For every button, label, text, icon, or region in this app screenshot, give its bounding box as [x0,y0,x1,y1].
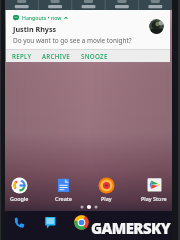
staticText: Play Store [141,195,167,202]
button[interactable]: Contact photo [149,19,164,34]
button[interactable]: SNOOZE [79,50,110,62]
button[interactable]: ARCHIVE [40,50,73,62]
button[interactable]: REPLY [10,50,34,62]
button[interactable]: Create [54,177,73,202]
button[interactable]: Google [9,177,30,202]
staticText: ARCHIVE [42,52,71,60]
staticText: Do you want to go see a movie tonight? [13,36,132,45]
staticText: Justin Rhyss [13,24,57,34]
staticText: Hangouts • now [22,14,62,21]
button[interactable]: Phone [11,214,28,231]
staticText: Play [101,195,112,202]
button[interactable]: Hangouts • now [6,10,170,49]
button[interactable]: Chrome [73,214,90,231]
staticText: Create [55,195,72,202]
button[interactable]: Messages [42,214,59,231]
staticText: GAMERSKY [91,218,171,238]
staticText: SNOOZE [81,52,108,60]
staticText: Google [10,195,29,202]
button[interactable]: Play [97,177,116,202]
staticText: REPLY [12,52,32,60]
button[interactable]: Play Store [140,177,168,202]
